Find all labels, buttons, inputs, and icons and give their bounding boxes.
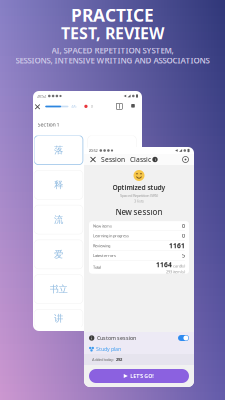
button[interactable]: 讲 xyxy=(34,309,83,327)
staticText: TEST, REVIEW xyxy=(61,22,164,44)
staticText: 释 xyxy=(54,179,63,191)
staticText: PRACTICE xyxy=(71,3,154,26)
staticText: New session xyxy=(115,206,162,217)
staticText: 0 xyxy=(182,222,185,229)
staticText: Session xyxy=(101,155,125,164)
staticText: bookstand xyxy=(103,252,120,257)
staticText: card(s) xyxy=(173,263,185,269)
button[interactable]: Grid view xyxy=(116,103,122,109)
staticText: 爱 xyxy=(54,249,63,260)
button[interactable]: 落 xyxy=(34,136,83,165)
button[interactable]: Study plan xyxy=(84,344,194,354)
staticText: Total xyxy=(93,264,101,270)
button[interactable]: 爱 xyxy=(34,240,83,269)
staticText: 0 xyxy=(91,103,93,109)
button[interactable]: to flow, to disseminate to xyxy=(88,136,136,165)
staticText: 293 item(s) xyxy=(166,269,185,274)
staticText: 落 xyxy=(54,144,63,156)
staticText: to explain xyxy=(104,182,120,187)
button[interactable]: Close xyxy=(88,154,98,164)
staticText: 292 xyxy=(116,357,122,362)
button[interactable]: 流 xyxy=(34,205,83,234)
staticText: 讲 xyxy=(54,313,63,324)
staticText: AI, SPACED REPETITION SYSTEM, xyxy=(51,45,173,56)
staticText: New items xyxy=(93,223,112,228)
button[interactable]: Close xyxy=(35,104,40,109)
staticText: Reviewing xyxy=(93,243,110,248)
button[interactable]: to explain xyxy=(88,170,136,199)
button[interactable]: 书立 xyxy=(34,275,83,304)
button[interactable]: Custom session toggle xyxy=(178,334,189,342)
staticText: 流 xyxy=(54,214,63,225)
button[interactable]: to love xyxy=(88,205,136,234)
staticText: 20:52 xyxy=(37,93,46,99)
staticText: to love xyxy=(106,217,117,222)
staticText: Spaced Repetition (SRS) xyxy=(120,193,158,198)
staticText: LET'S GO! xyxy=(130,372,154,380)
button[interactable]: bookstand xyxy=(88,240,136,269)
staticText: 5 xyxy=(182,252,185,259)
staticText: Latest errors xyxy=(93,253,116,258)
staticText: to flow, to disseminate to xyxy=(91,147,133,153)
button[interactable]: 释 xyxy=(34,170,83,199)
staticText: Study plan xyxy=(96,345,121,353)
staticText: 书立 xyxy=(50,283,68,295)
staticText: Classic xyxy=(130,155,151,164)
staticText: Learning in progress xyxy=(93,233,129,238)
staticText: i xyxy=(154,157,155,162)
staticText: Section 1 xyxy=(37,121,59,128)
staticText: 1164 xyxy=(156,260,172,269)
button[interactable]: More xyxy=(131,104,135,108)
button[interactable]: Settings xyxy=(181,155,190,164)
staticText: 3 lists xyxy=(134,198,144,203)
staticText: 0 xyxy=(182,232,185,239)
staticText: SESSIONS, INTENSIVE WRITING AND ASSOCIAT… xyxy=(15,55,209,66)
staticText: i xyxy=(91,335,92,341)
staticText: 4/6 xyxy=(71,103,76,109)
staticText: 1161 xyxy=(169,241,185,250)
button[interactable]: LET'S GO! xyxy=(89,369,189,383)
staticText: Added today: xyxy=(92,357,114,362)
button[interactable]: Mode info xyxy=(151,155,159,163)
staticText: 20:52 xyxy=(88,148,97,153)
staticText: Custom session xyxy=(97,334,136,342)
staticText: Optimized study xyxy=(112,183,165,192)
